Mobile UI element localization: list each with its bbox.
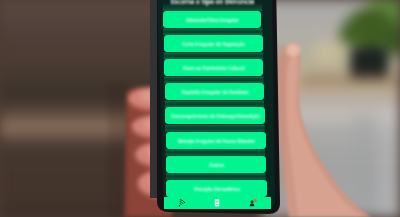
staticText: Corte Irregular de Vegetação xyxy=(182,41,245,47)
button[interactable]: Descumprimento de Embargo/Interdição xyxy=(165,107,265,124)
staticText: Descumprimento de Embargo/Interdição xyxy=(171,113,260,119)
staticText: Manejo Irregular de Fauna Silvestre xyxy=(178,138,255,144)
button[interactable]: Manejo Irregular de Fauna Silvestre xyxy=(166,132,266,149)
button[interactable]: Perfil xyxy=(235,197,271,209)
button[interactable]: Mapa xyxy=(164,197,199,209)
staticText: Outros xyxy=(209,162,224,168)
button[interactable]: Atividade/Obra Irregular xyxy=(163,11,261,28)
button[interactable]: Depósito Irregular de Resíduos xyxy=(165,83,264,100)
staticText: Depósito Irregular de Resíduos xyxy=(181,89,249,95)
button[interactable]: Dano ao Patrimônio Cultural xyxy=(164,59,263,76)
button[interactable]: Corte Irregular de Vegetação xyxy=(164,35,263,52)
staticText: Poluição Atmosférica xyxy=(194,186,240,192)
staticText: Escolha o tipo de Denúncia xyxy=(162,0,263,6)
button[interactable]: Denúncias xyxy=(199,197,235,209)
button[interactable]: Outros xyxy=(166,156,266,173)
button[interactable]: Poluição Atmosférica xyxy=(166,180,267,197)
staticText: Dano ao Patrimônio Cultural xyxy=(183,65,245,71)
staticText: Atividade/Obra Irregular xyxy=(186,17,239,23)
